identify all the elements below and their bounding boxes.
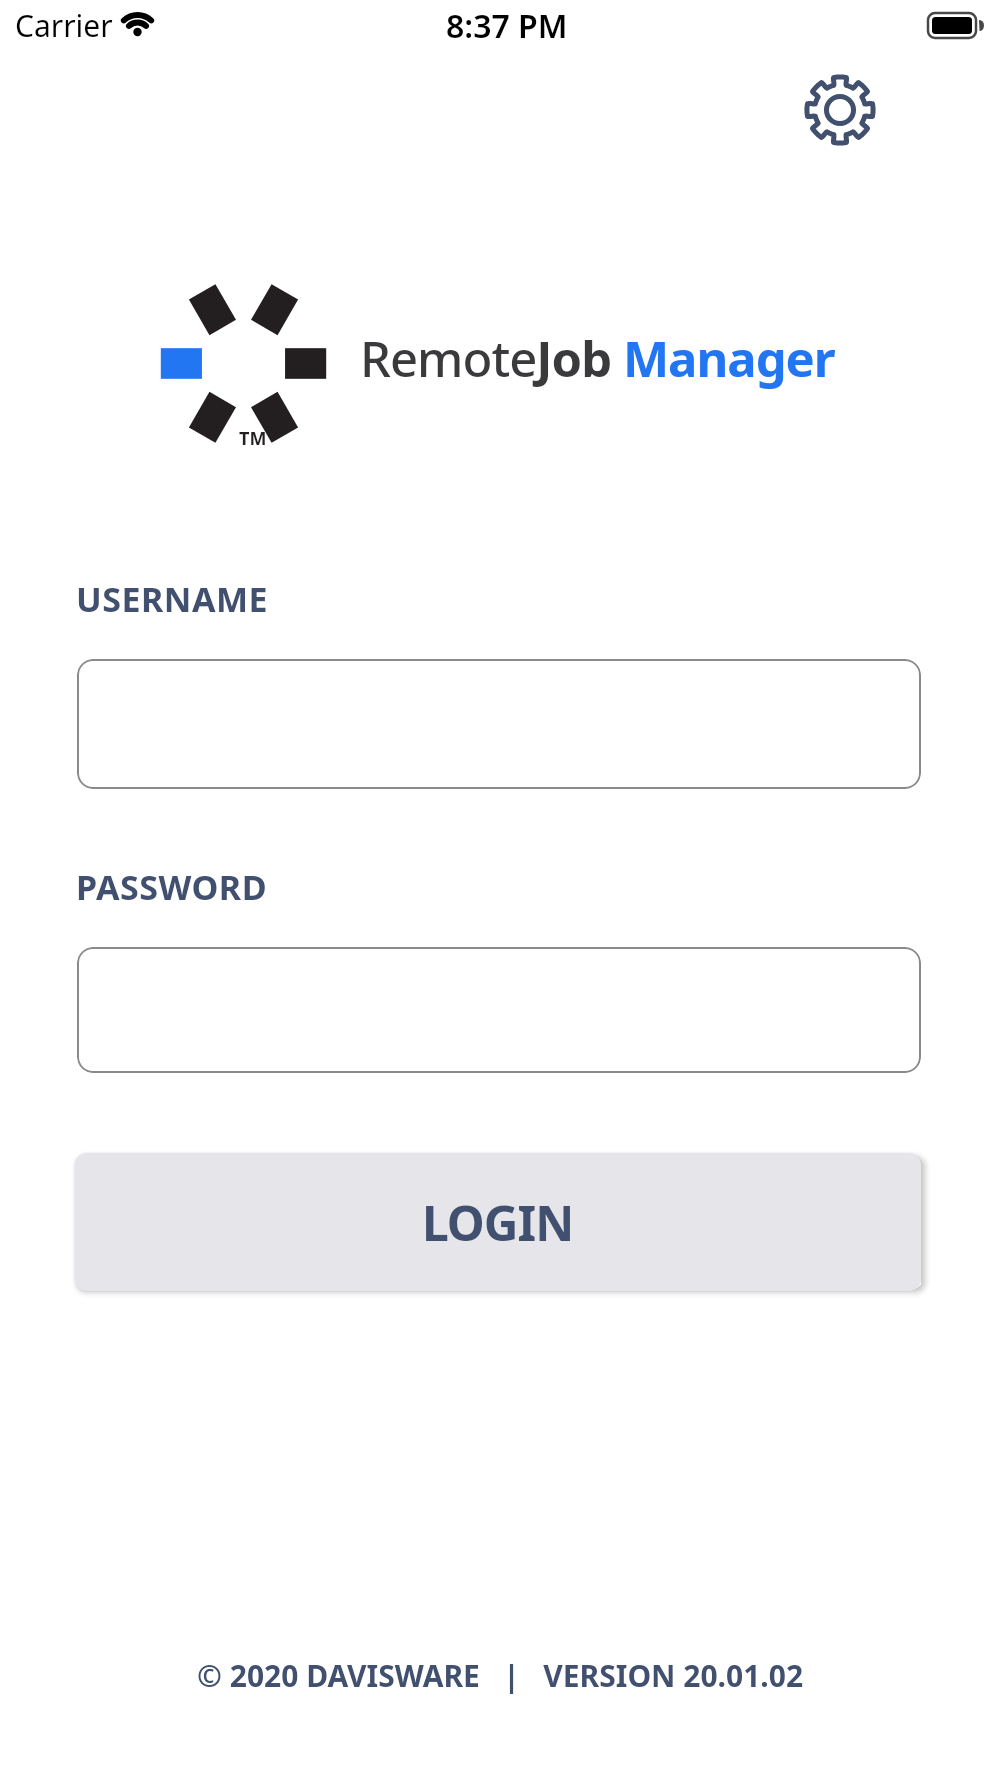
- button[interactable]: [77, 659, 921, 789]
- staticText: TM: [239, 426, 267, 451]
- staticText: 8:37 PM: [446, 4, 568, 48]
- staticText: LOGIN: [422, 1190, 574, 1255]
- staticText: PASSWORD: [76, 864, 268, 910]
- staticText: © 2020 DAVISWARE | VERSION 20.01.02: [197, 1655, 804, 1696]
- button[interactable]: [800, 70, 880, 150]
- staticText: USERNAME: [76, 576, 269, 622]
- staticText: Carrier: [15, 5, 113, 46]
- button[interactable]: [77, 947, 921, 1073]
- staticText: RemoteJob Manager: [360, 325, 835, 392]
- button[interactable]: LOGIN: [75, 1153, 921, 1291]
